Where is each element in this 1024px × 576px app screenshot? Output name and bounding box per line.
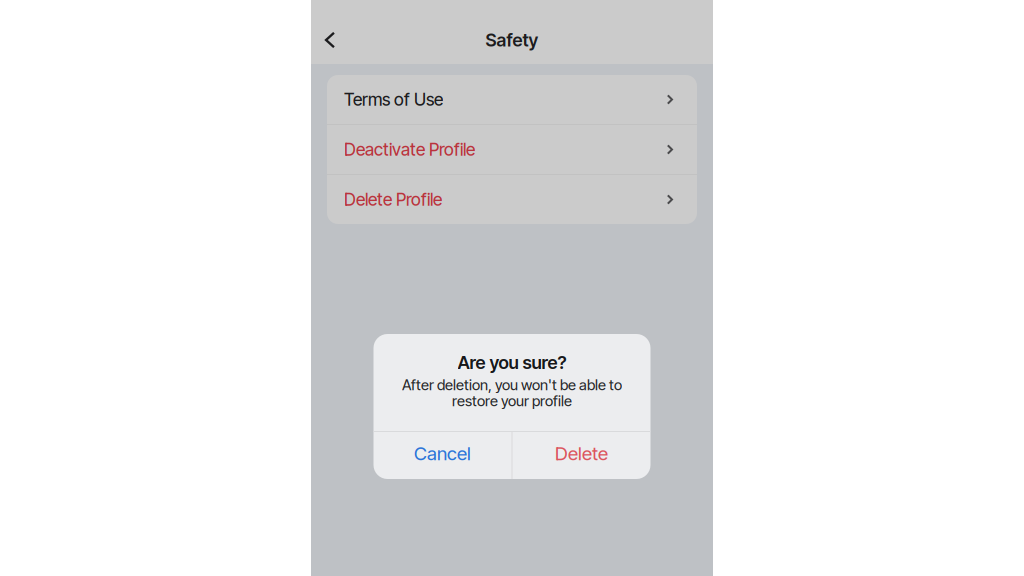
button[interactable]: Delete — [512, 432, 650, 479]
staticText: restore your profile — [452, 392, 572, 410]
staticText: Are you sure? — [457, 352, 566, 373]
button[interactable]: Deactivate Profile — [327, 125, 697, 174]
button[interactable]: Delete Profile — [327, 175, 697, 224]
staticText: After deletion, you won't be able to — [402, 376, 622, 394]
staticText: Deactivate Profile — [344, 139, 475, 160]
staticText: Cancel — [414, 442, 471, 465]
staticText: Safety — [485, 29, 538, 51]
button[interactable]: Cancel — [373, 432, 511, 479]
staticText: Delete — [555, 442, 608, 465]
staticText: Delete Profile — [344, 189, 442, 210]
button[interactable]: Terms of Use — [327, 75, 697, 124]
button[interactable]: Back — [315, 18, 345, 62]
staticText: Terms of Use — [344, 89, 443, 110]
